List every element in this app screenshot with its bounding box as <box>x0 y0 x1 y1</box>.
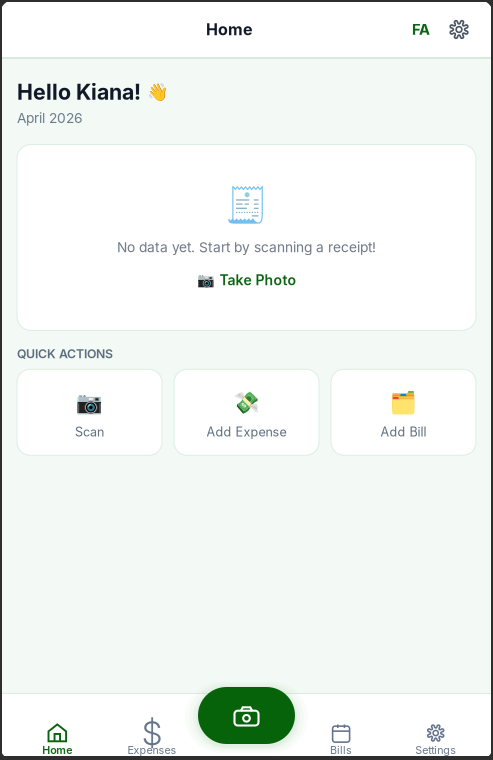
button[interactable]: 📷 <box>17 369 162 455</box>
staticText: 🗂️ <box>390 390 417 415</box>
button[interactable]: 📷 <box>196 272 296 289</box>
button[interactable]: Home <box>10 694 105 756</box>
staticText: Bills <box>330 743 352 756</box>
staticText: 🧾 <box>225 184 268 225</box>
staticText: Expenses <box>127 743 176 756</box>
staticText: 👋 <box>147 82 169 102</box>
staticText: Settings <box>415 743 456 756</box>
staticText: 💸 <box>233 390 260 415</box>
staticText: Scan <box>75 424 104 439</box>
staticText: Home <box>42 743 72 756</box>
button[interactable]: Scan receipt <box>198 687 295 744</box>
button[interactable]: FA <box>406 14 436 44</box>
staticText: Add Bill <box>380 424 426 439</box>
staticText: April 2026 <box>17 110 83 126</box>
button[interactable]: $ <box>105 694 199 756</box>
button[interactable]: 💸 <box>174 369 319 455</box>
staticText: $ <box>142 713 162 753</box>
staticText: QUICK ACTIONS <box>17 346 113 361</box>
staticText: FA <box>412 21 430 38</box>
button[interactable]: Settings <box>388 694 483 756</box>
button[interactable]: Bills <box>294 694 388 756</box>
staticText: Add Expense <box>206 424 286 439</box>
staticText: Home <box>206 20 253 39</box>
staticText: Hello Kiana! <box>17 79 141 105</box>
staticText: 📷 <box>196 272 213 288</box>
staticText: No data yet. Start by scanning a receipt… <box>117 239 376 256</box>
button[interactable]: 🗂️ <box>331 369 476 455</box>
button[interactable]: Settings <box>444 14 474 44</box>
staticText: Take Photo <box>219 272 296 289</box>
staticText: 📷 <box>76 390 103 415</box>
